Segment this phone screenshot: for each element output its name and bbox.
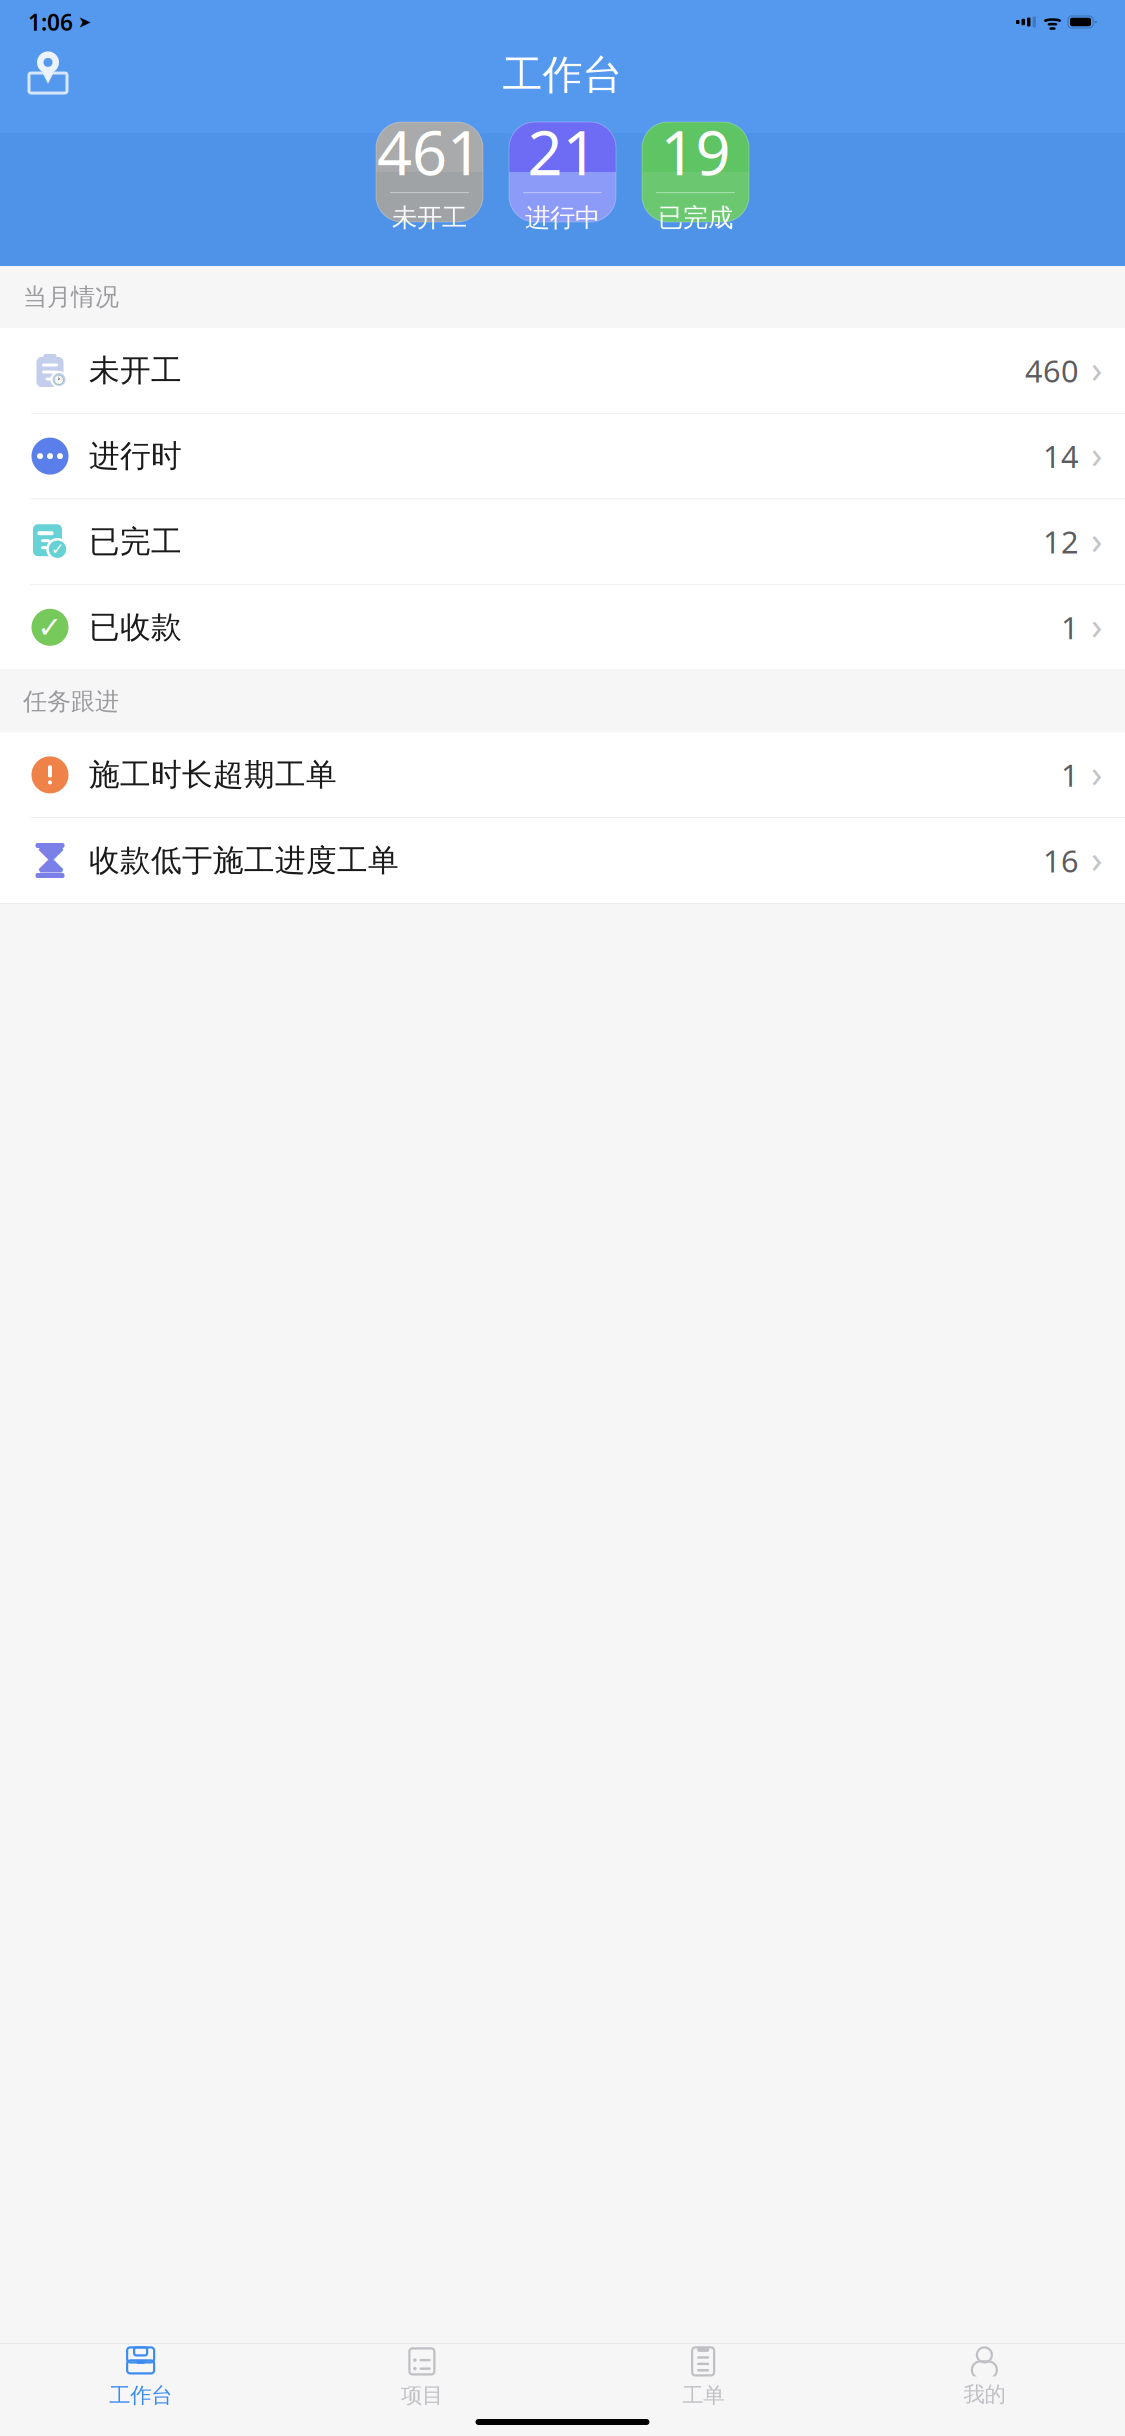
staticText: 施工时长超期工单: [89, 756, 337, 794]
staticText: 1: [1061, 754, 1079, 795]
staticText: ›: [1091, 834, 1103, 883]
staticText: 461: [377, 111, 482, 192]
button[interactable]: Map location: [0, 51, 74, 99]
staticText: ✓: [51, 540, 64, 558]
staticText: 工单: [682, 2382, 724, 2409]
staticText: ›: [1091, 344, 1103, 393]
button[interactable]: 项目: [281, 2337, 562, 2415]
button[interactable]: ✓: [0, 585, 1125, 670]
staticText: ⧗: [36, 841, 64, 880]
button[interactable]: 🕐: [0, 328, 1125, 414]
staticText: 未开工: [89, 352, 182, 389]
staticText: 已完成: [658, 202, 733, 233]
staticText: 项目: [401, 2382, 443, 2409]
staticText: 1: [1061, 607, 1079, 648]
button[interactable]: 19: [642, 122, 749, 222]
button[interactable]: 进行时: [0, 414, 1125, 499]
staticText: 14: [1043, 436, 1079, 476]
staticText: 我的: [963, 2381, 1005, 2408]
staticText: 未开工: [392, 202, 467, 233]
staticText: ➤: [78, 13, 91, 31]
button[interactable]: 461: [376, 122, 483, 222]
button[interactable]: ✓: [0, 499, 1125, 585]
staticText: 已完工: [89, 523, 182, 561]
button[interactable]: 工单: [562, 2337, 844, 2415]
staticText: ›: [1091, 600, 1103, 650]
staticText: 21: [527, 111, 597, 192]
staticText: 工作台: [502, 50, 622, 99]
staticText: 12: [1043, 521, 1079, 562]
button[interactable]: 我的: [844, 2338, 1125, 2414]
staticText: 当月情况: [23, 282, 119, 312]
staticText: ›: [1091, 515, 1103, 564]
staticText: 任务跟进: [23, 687, 119, 716]
staticText: 16: [1043, 840, 1079, 881]
staticText: 进行时: [89, 437, 182, 475]
staticText: ›: [1091, 748, 1103, 798]
staticText: 🕐: [53, 374, 65, 385]
staticText: ᯤ: [1043, 9, 1061, 35]
button[interactable]: 21: [509, 122, 616, 222]
button[interactable]: ⧗: [0, 818, 1125, 903]
staticText: ✓: [37, 611, 62, 644]
button[interactable]: 工作台: [0, 2337, 281, 2415]
staticText: 1:06: [28, 7, 73, 37]
staticText: 工作台: [109, 2382, 172, 2409]
staticText: ›: [1091, 429, 1103, 479]
staticText: 19: [660, 111, 730, 192]
staticText: 进行中: [525, 202, 600, 233]
staticText: 460: [1025, 350, 1079, 391]
button[interactable]: 施工时长超期工单: [0, 732, 1125, 818]
staticText: 收款低于施工进度工单: [89, 842, 399, 879]
staticText: ▾: [42, 64, 53, 89]
staticText: 已收款: [89, 608, 182, 646]
